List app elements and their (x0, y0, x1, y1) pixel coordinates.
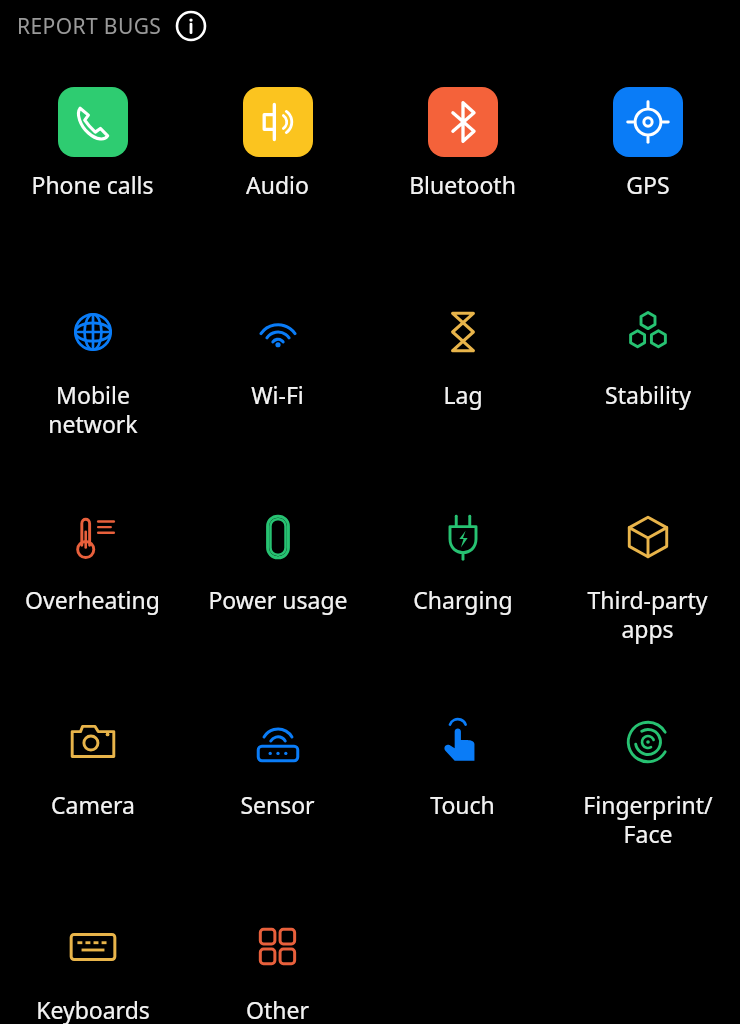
button[interactable]: Sensor (185, 667, 370, 872)
button[interactable]: Stability (555, 257, 740, 462)
staticText: Third-party apps (587, 584, 708, 645)
staticText: Phone calls (31, 169, 154, 200)
button[interactable]: Mobile network (0, 257, 185, 462)
staticText: Mobile network (48, 379, 138, 440)
button[interactable]: GPS (555, 52, 740, 257)
button[interactable]: Charging (370, 462, 555, 667)
staticText: REPORT BUGS (17, 12, 162, 41)
staticText: Fingerprint/ Face (583, 789, 713, 850)
staticText: Wi-Fi (251, 379, 304, 410)
staticText: Camera (51, 789, 135, 820)
button[interactable]: Audio (185, 52, 370, 257)
button[interactable]: Touch (370, 667, 555, 872)
button[interactable]: Overheating (0, 462, 185, 667)
staticText: Bluetooth (409, 169, 516, 200)
button[interactable]: Wi-Fi (185, 257, 370, 462)
staticText: Touch (430, 789, 495, 820)
staticText: Other (246, 994, 309, 1024)
staticText: Lag (443, 379, 483, 410)
button[interactable]: Fingerprint/ Face (555, 667, 740, 872)
button[interactable]: Phone calls (0, 52, 185, 257)
button[interactable]: Keyboards (0, 872, 185, 1024)
button[interactable]: Other (185, 872, 370, 1024)
button[interactable]: Third-party apps (555, 462, 740, 667)
staticText: Keyboards (36, 994, 150, 1024)
staticText: Stability (605, 379, 691, 410)
button[interactable]: Information (174, 9, 208, 43)
button[interactable]: Bluetooth (370, 52, 555, 257)
staticText: GPS (626, 169, 670, 200)
button[interactable]: Camera (0, 667, 185, 872)
button[interactable]: Power usage (185, 462, 370, 667)
staticText: Power usage (208, 584, 348, 615)
staticText: Overheating (25, 584, 160, 615)
staticText: Audio (246, 169, 309, 200)
staticText: Sensor (240, 789, 315, 820)
button[interactable]: Lag (370, 257, 555, 462)
staticText: Charging (413, 584, 513, 615)
